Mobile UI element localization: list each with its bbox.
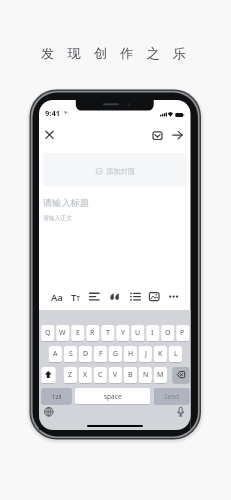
button[interactable]: T [101, 325, 114, 341]
staticText: 9:41 [45, 108, 60, 118]
button[interactable] [127, 289, 143, 304]
staticText: N [143, 370, 149, 380]
button[interactable] [166, 289, 182, 304]
button[interactable]: F [94, 346, 107, 362]
button[interactable]: R [86, 325, 99, 341]
staticText: Q [45, 328, 51, 338]
staticText: G [113, 349, 119, 359]
button[interactable]: N [139, 367, 152, 383]
staticText: S [69, 349, 73, 359]
button[interactable]: P [176, 325, 189, 341]
button[interactable]: Y [116, 325, 129, 341]
staticText: 发 现 创 作 之 乐 [41, 44, 187, 62]
button[interactable]: M [154, 367, 167, 383]
staticText: Aa [51, 291, 63, 304]
button[interactable]: O [161, 325, 174, 341]
staticText: I [151, 328, 154, 338]
button[interactable] [154, 388, 189, 404]
button[interactable]: U [131, 325, 144, 341]
button[interactable] [150, 128, 165, 142]
button[interactable]: A [49, 346, 62, 362]
staticText: Y [121, 328, 125, 338]
button[interactable] [107, 289, 123, 304]
staticText: T [106, 328, 110, 338]
button[interactable] [43, 128, 57, 142]
staticText: L [174, 349, 178, 359]
staticText: Z [68, 370, 73, 380]
button[interactable] [41, 388, 72, 404]
button[interactable]: V [109, 367, 122, 383]
staticText: K [158, 349, 163, 359]
button[interactable] [41, 404, 57, 420]
button[interactable] [173, 367, 190, 383]
staticText: E [76, 328, 80, 338]
button[interactable]: I [146, 325, 159, 341]
button[interactable] [43, 153, 187, 187]
staticText: D [83, 349, 89, 359]
button[interactable]: G [109, 346, 122, 362]
staticText: F [99, 349, 103, 359]
staticText: U [135, 328, 141, 338]
button[interactable] [170, 128, 185, 142]
button[interactable]: Z [64, 367, 77, 383]
button[interactable]: S [64, 346, 77, 362]
staticText: TT [71, 291, 81, 304]
staticText: H [128, 349, 134, 359]
button[interactable] [88, 289, 104, 304]
button[interactable]: C [94, 367, 107, 383]
button[interactable] [173, 404, 189, 420]
button[interactable] [75, 388, 150, 404]
staticText: 添加封面 [106, 167, 136, 176]
button[interactable] [49, 289, 65, 304]
staticText: 请输入正文 [43, 214, 72, 221]
button[interactable]: J [139, 346, 152, 362]
staticText: Send [164, 392, 180, 401]
staticText: J [145, 349, 147, 359]
staticText: A [53, 349, 58, 359]
staticText: 123 [52, 393, 62, 400]
staticText: O [165, 328, 171, 338]
staticText: R [90, 328, 95, 338]
staticText: W [59, 328, 66, 338]
button[interactable]: D [79, 346, 92, 362]
button[interactable]: B [124, 367, 137, 383]
staticText: B [128, 370, 133, 380]
button[interactable] [41, 367, 56, 383]
staticText: C [98, 370, 103, 380]
staticText: V [113, 370, 118, 380]
button[interactable]: TT [56, 289, 96, 305]
button[interactable]: Q [41, 325, 54, 341]
staticText: 请输入标题 [43, 197, 89, 209]
button[interactable]: E [71, 325, 84, 341]
button[interactable] [69, 289, 85, 304]
button[interactable] [146, 289, 162, 304]
staticText: M [157, 370, 164, 380]
staticText: P [180, 328, 185, 338]
staticText: X [83, 370, 88, 380]
button[interactable]: X [79, 367, 92, 383]
button[interactable]: K [154, 346, 167, 362]
button[interactable]: H [124, 346, 137, 362]
button[interactable]: L [169, 346, 182, 362]
staticText: space [104, 392, 122, 401]
button[interactable]: W [56, 325, 69, 341]
